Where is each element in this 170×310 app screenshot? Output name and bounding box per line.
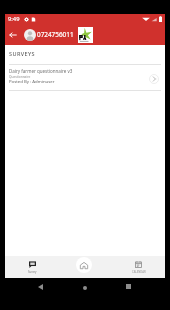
button[interactable]: Back bbox=[6, 28, 19, 41]
staticText: CALENDAR bbox=[132, 270, 146, 274]
staticText: 0724756011 bbox=[37, 30, 74, 39]
button[interactable]: Dairy farmer questionnaire v3 bbox=[5, 65, 165, 90]
button[interactable]: CALENDAR bbox=[112, 256, 165, 278]
button[interactable]: Account bbox=[24, 29, 36, 41]
staticText: Questionnaire bbox=[9, 75, 31, 79]
staticText: Survey bbox=[28, 270, 37, 274]
staticText: 9:49 bbox=[8, 15, 20, 23]
button[interactable]: Home bbox=[76, 257, 92, 273]
staticText: Posted By : Adminuser bbox=[9, 78, 55, 84]
button[interactable]: App logo bbox=[78, 27, 93, 43]
staticText: Dairy farmer questionnaire v3 bbox=[9, 68, 73, 74]
button[interactable]: Survey bbox=[5, 256, 59, 278]
button[interactable]: Open survey bbox=[148, 73, 159, 84]
staticText: SURVEYS bbox=[9, 50, 36, 57]
